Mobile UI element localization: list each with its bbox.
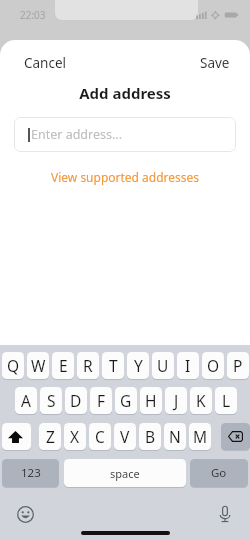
button[interactable]: Shift xyxy=(2,423,31,450)
button[interactable]: Enter address... xyxy=(14,117,236,152)
button[interactable]: H xyxy=(140,387,162,414)
staticText: E xyxy=(59,355,68,376)
staticText: View supported addresses xyxy=(51,169,200,185)
button[interactable]: Cancel xyxy=(0,46,91,80)
button[interactable]: M xyxy=(189,423,211,450)
staticText: W xyxy=(31,355,46,376)
button[interactable]: J xyxy=(165,387,187,414)
button[interactable]: R xyxy=(77,352,99,379)
button[interactable]: Q xyxy=(2,352,24,379)
button[interactable]: space xyxy=(64,459,186,487)
button[interactable]: X xyxy=(64,423,86,450)
button[interactable]: U xyxy=(152,352,174,379)
staticText: J xyxy=(174,390,179,411)
staticText: K xyxy=(196,390,206,411)
staticText: G xyxy=(120,390,132,411)
button[interactable]: K xyxy=(190,387,212,414)
button[interactable]: F xyxy=(90,387,112,414)
staticText: M xyxy=(193,426,208,447)
button[interactable]: B xyxy=(139,423,161,450)
button[interactable]: Z xyxy=(39,423,61,450)
staticText: space xyxy=(110,466,140,481)
button[interactable]: A xyxy=(15,387,37,414)
staticText: U xyxy=(157,355,169,376)
staticText: Cancel xyxy=(24,54,67,72)
button[interactable]: C xyxy=(89,423,111,450)
staticText: Enter address... xyxy=(31,126,123,143)
staticText: D xyxy=(70,390,82,411)
button[interactable]: View supported addresses xyxy=(43,166,208,188)
button[interactable]: O xyxy=(202,352,224,379)
button[interactable]: L xyxy=(215,387,237,414)
button[interactable]: G xyxy=(115,387,137,414)
staticText: F xyxy=(97,390,106,411)
staticText: R xyxy=(83,355,93,376)
button[interactable]: Emoji xyxy=(17,506,34,523)
staticText: Save xyxy=(200,54,230,72)
staticText: S xyxy=(47,390,56,411)
staticText: C xyxy=(95,426,105,447)
staticText: Add address xyxy=(0,83,250,103)
button[interactable]: S xyxy=(40,387,62,414)
staticText: Z xyxy=(46,426,55,447)
button[interactable]: E xyxy=(52,352,74,379)
staticText: I xyxy=(185,355,191,376)
staticText: X xyxy=(70,426,80,447)
staticText: Y xyxy=(134,355,143,376)
staticText: A xyxy=(21,390,31,411)
staticText: N xyxy=(169,426,181,447)
button[interactable]: Voice input xyxy=(218,505,232,523)
staticText: B xyxy=(145,426,156,447)
staticText: 22:03 xyxy=(20,8,46,22)
staticText: Q xyxy=(7,355,20,376)
button[interactable]: D xyxy=(65,387,87,414)
button[interactable]: Go xyxy=(190,459,248,487)
button[interactable]: Backspace xyxy=(221,423,250,450)
staticText: H xyxy=(145,390,157,411)
button[interactable]: 123 xyxy=(2,459,59,487)
button[interactable]: V xyxy=(114,423,136,450)
button[interactable]: P xyxy=(227,352,249,379)
button[interactable]: Y xyxy=(127,352,149,379)
button[interactable]: N xyxy=(164,423,186,450)
staticText: 123 xyxy=(21,465,41,481)
staticText: Go xyxy=(211,465,227,481)
button[interactable]: T xyxy=(102,352,124,379)
button[interactable]: Save xyxy=(180,46,250,80)
button[interactable]: I xyxy=(177,352,199,379)
staticText: P xyxy=(233,355,243,376)
staticText: T xyxy=(109,355,118,376)
staticText: O xyxy=(207,355,220,376)
staticText: V xyxy=(120,426,130,447)
staticText: L xyxy=(222,390,231,411)
button[interactable]: W xyxy=(27,352,49,379)
